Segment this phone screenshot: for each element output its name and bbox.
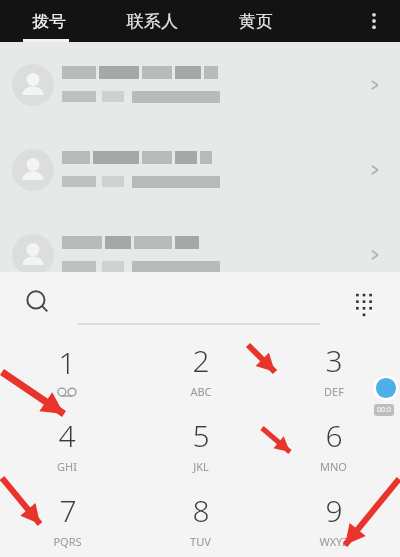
button[interactable]: 黄页 (206, 0, 306, 42)
button[interactable]: 拨号 (0, 0, 98, 42)
button[interactable]: Search (14, 278, 62, 326)
staticText: 3 (325, 340, 343, 381)
staticText: 联系人 (127, 11, 178, 32)
button[interactable] (0, 212, 400, 297)
button[interactable]: 6 (267, 407, 400, 482)
staticText: 00:0 (377, 405, 391, 415)
button[interactable]: 联系人 (98, 0, 206, 42)
staticText: MNO (320, 459, 347, 474)
staticText: 6 (325, 415, 343, 456)
button[interactable]: 2 (134, 332, 267, 407)
button[interactable]: Keypad (340, 278, 388, 326)
staticText: PQRS (53, 534, 82, 549)
staticText: 1 (58, 342, 76, 383)
staticText: 9 (325, 490, 343, 531)
staticText: GHI (57, 459, 77, 474)
button[interactable]: 9 (267, 482, 400, 557)
staticText: 2 (192, 340, 210, 381)
staticText: 5 (192, 415, 210, 456)
button[interactable] (0, 42, 400, 127)
button[interactable]: 8 (134, 482, 267, 557)
button[interactable]: 1 (0, 332, 134, 407)
staticText: 8 (192, 490, 210, 531)
button[interactable]: 3 (267, 332, 400, 407)
staticText: 黄页 (239, 11, 273, 32)
staticText: DEF (324, 384, 344, 399)
staticText: WXYZ (319, 534, 349, 549)
button[interactable]: Ongoing call (372, 366, 400, 410)
staticText: ABC (190, 384, 212, 399)
button[interactable]: 4 (0, 407, 134, 482)
button[interactable]: 7 (0, 482, 134, 557)
button[interactable] (78, 279, 320, 325)
staticText: JKL (193, 459, 209, 474)
staticText: 4 (58, 415, 76, 456)
button[interactable] (0, 127, 400, 212)
staticText: 拨号 (32, 11, 66, 32)
button[interactable]: 5 (134, 407, 267, 482)
button[interactable]: More options (348, 0, 400, 42)
staticText: 7 (59, 490, 77, 531)
staticText: TUV (190, 534, 211, 549)
